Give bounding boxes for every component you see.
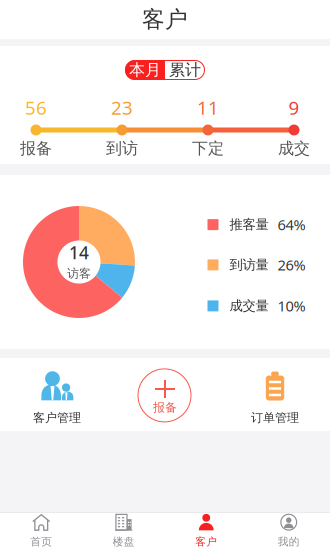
staticText: 累计 bbox=[169, 60, 201, 80]
button[interactable]: 累计 bbox=[165, 60, 205, 80]
staticText: 到访量 bbox=[229, 257, 268, 273]
button[interactable]: 楼盘 bbox=[82, 512, 165, 550]
staticText: 我的 bbox=[278, 535, 300, 548]
staticText: 成交量 bbox=[229, 298, 268, 314]
button[interactable]: 客户管理 bbox=[0, 358, 110, 431]
button[interactable]: 首页 bbox=[0, 512, 82, 550]
button[interactable]: 订单管理 bbox=[220, 358, 330, 431]
staticText: 客户 bbox=[142, 6, 188, 33]
staticText: 23 bbox=[111, 95, 133, 120]
staticText: 客户管理 bbox=[33, 410, 81, 425]
staticText: 报备 bbox=[20, 139, 52, 158]
button[interactable]: 报备 bbox=[110, 358, 220, 431]
staticText: 订单管理 bbox=[251, 410, 299, 425]
staticText: 10% bbox=[277, 296, 305, 316]
staticText: 26% bbox=[277, 255, 305, 275]
staticText: 楼盘 bbox=[113, 535, 135, 548]
staticText: 11 bbox=[197, 95, 219, 120]
staticText: 64% bbox=[277, 215, 305, 234]
staticText: 56 bbox=[25, 95, 47, 120]
button[interactable]: 客户 bbox=[165, 512, 247, 550]
staticText: 本月 bbox=[129, 60, 161, 80]
staticText: 成交 bbox=[278, 139, 310, 158]
staticText: 推客量 bbox=[229, 216, 268, 233]
button[interactable]: 本月 bbox=[125, 60, 165, 80]
staticText: 9 bbox=[288, 95, 299, 120]
staticText: 14 bbox=[69, 241, 89, 264]
staticText: 首页 bbox=[30, 535, 52, 548]
staticText: 客户 bbox=[195, 535, 217, 548]
button[interactable]: 我的 bbox=[247, 512, 330, 550]
staticText: 下定 bbox=[192, 139, 224, 158]
staticText: 报备 bbox=[153, 400, 177, 415]
staticText: 到访 bbox=[106, 139, 138, 158]
staticText: 访客 bbox=[67, 266, 91, 281]
